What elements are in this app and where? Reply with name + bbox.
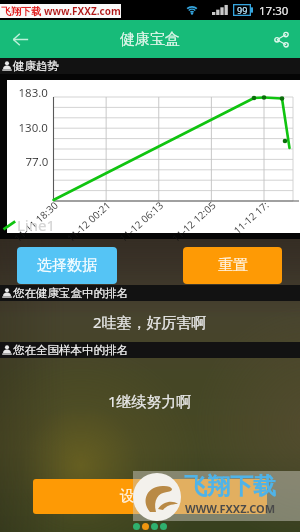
staticText: 99 <box>237 4 248 16</box>
staticText: 您在全国样本中的排名 <box>13 343 128 357</box>
staticText: 17:30 <box>259 3 289 19</box>
button[interactable]: 设置目标 <box>33 479 267 514</box>
staticText: 设置目标 <box>120 487 180 506</box>
staticText: 1继续努力啊 <box>108 391 192 411</box>
button[interactable]: 选择数据 <box>17 247 117 284</box>
staticText: 健康趋势 <box>13 59 59 73</box>
button[interactable]: 重置 <box>183 247 282 284</box>
staticText: 选择数据 <box>37 256 97 275</box>
staticText: 飞翔下载 <box>184 472 276 501</box>
staticText: 飞翔下载 <box>1 5 41 18</box>
staticText: 重置 <box>218 256 248 275</box>
staticText: WWW.FXXZ.COM <box>185 501 276 516</box>
button[interactable]: Back <box>0 20 40 58</box>
staticText: 2哇塞，好厉害啊 <box>93 312 207 332</box>
staticText: Line1 <box>17 215 56 235</box>
staticText: 健康宝盒 <box>120 30 180 49</box>
button[interactable]: Share <box>262 20 300 58</box>
staticText: 您在健康宝盒中的排名 <box>13 286 128 300</box>
staticText: www.FXXZ.com <box>44 4 121 18</box>
